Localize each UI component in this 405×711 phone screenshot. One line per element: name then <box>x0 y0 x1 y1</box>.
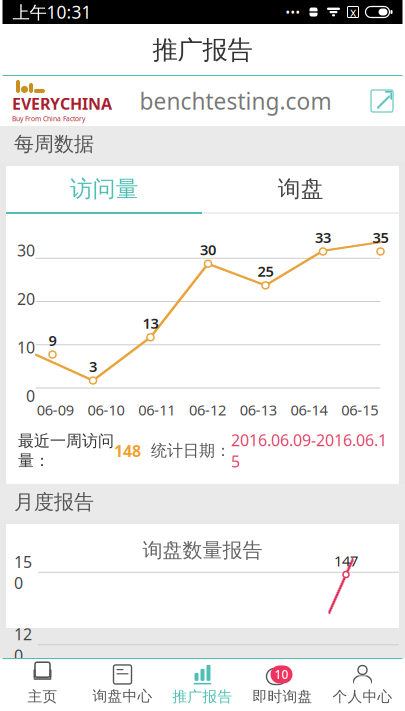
staticText: Buy From China Factory <box>12 114 85 123</box>
staticText: 推广报告 <box>152 34 252 65</box>
staticText: 30 <box>17 240 35 261</box>
staticText: 25 <box>257 261 273 281</box>
staticText: 20 <box>17 288 35 309</box>
staticText: 询盘 <box>278 175 324 203</box>
staticText: 2016.06.09-2016.06.15 <box>231 429 387 472</box>
button[interactable]: 询盘 <box>202 166 399 212</box>
staticText: 120 <box>14 623 32 666</box>
staticText: 询盘数量报告 <box>142 538 262 563</box>
staticText: 0 <box>26 385 35 406</box>
staticText: 月度报告 <box>14 490 94 514</box>
staticText: 上午10:31 <box>12 0 91 23</box>
staticText: 每周数据 <box>14 132 94 156</box>
staticText: 推广报告 <box>172 687 232 705</box>
staticText: 150 <box>14 551 32 593</box>
staticText: 13 <box>142 313 158 333</box>
staticText: 35 <box>372 227 388 247</box>
staticText: 147 <box>334 551 358 570</box>
staticText: 询盘中心 <box>92 687 152 705</box>
button[interactable]: 个人中心 <box>322 659 402 709</box>
button[interactable]: 10 <box>242 659 322 709</box>
staticText: 06-14 <box>290 400 327 419</box>
button[interactable]: 推广报告 <box>162 659 242 709</box>
button[interactable]: 主页 <box>2 659 82 709</box>
staticText: 9 <box>48 331 56 350</box>
staticText: 即时询盘 <box>252 687 312 705</box>
staticText: 06-09 <box>37 400 74 419</box>
staticText: 06-12 <box>189 400 226 419</box>
button[interactable]: 询盘中心 <box>82 660 162 709</box>
staticText: benchtesting.com <box>139 86 331 116</box>
staticText: 06-11 <box>138 400 175 419</box>
staticText: 148 <box>114 440 141 461</box>
staticText: 个人中心 <box>332 687 392 705</box>
button[interactable]: 访问量 <box>6 166 202 212</box>
staticText: 06-15 <box>341 400 378 419</box>
button[interactable]: 在浏览器中打开 <box>359 78 405 124</box>
staticText: ••• <box>285 4 300 20</box>
staticText: 主页 <box>27 687 57 705</box>
staticText: 10 <box>17 337 35 358</box>
staticText: EVERYCHINA <box>12 93 112 114</box>
staticText: 33 <box>315 227 331 247</box>
staticText: 10 <box>274 666 288 682</box>
staticText: 访问量 <box>70 175 139 203</box>
staticText: 统计日期： <box>151 441 231 461</box>
staticText: 3 <box>89 356 97 376</box>
staticText: 最近一周访问量： <box>18 431 114 470</box>
staticText: 06-13 <box>240 400 277 419</box>
staticText: x <box>350 4 356 20</box>
staticText: 06-10 <box>88 400 125 419</box>
staticText: 30 <box>200 240 216 259</box>
